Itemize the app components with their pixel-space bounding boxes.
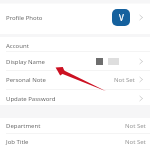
button[interactable]: Update Password (0, 89, 150, 105)
staticText: Not Set (125, 122, 146, 130)
button[interactable]: Job Title (0, 133, 150, 150)
staticText: Job Title (6, 138, 29, 146)
button[interactable]: Display Name (0, 51, 150, 70)
staticText: V (119, 12, 124, 23)
staticText: Update Password (6, 95, 56, 103)
button[interactable]: Personal Note (0, 70, 150, 89)
staticText: Not Set (125, 138, 146, 146)
button[interactable]: Profile Photo (0, 4, 150, 34)
staticText: Department (6, 122, 41, 130)
staticText: Personal Note (6, 76, 46, 84)
staticText: Not Set (114, 76, 135, 84)
button[interactable]: Department (0, 118, 150, 133)
other: Open (138, 14, 145, 21)
staticText: Account (6, 42, 29, 50)
other: Open (138, 58, 145, 65)
staticText: Profile Photo (6, 14, 43, 22)
other: Open (138, 76, 145, 83)
staticText: Display Name (6, 58, 45, 66)
other: Open (138, 95, 145, 102)
